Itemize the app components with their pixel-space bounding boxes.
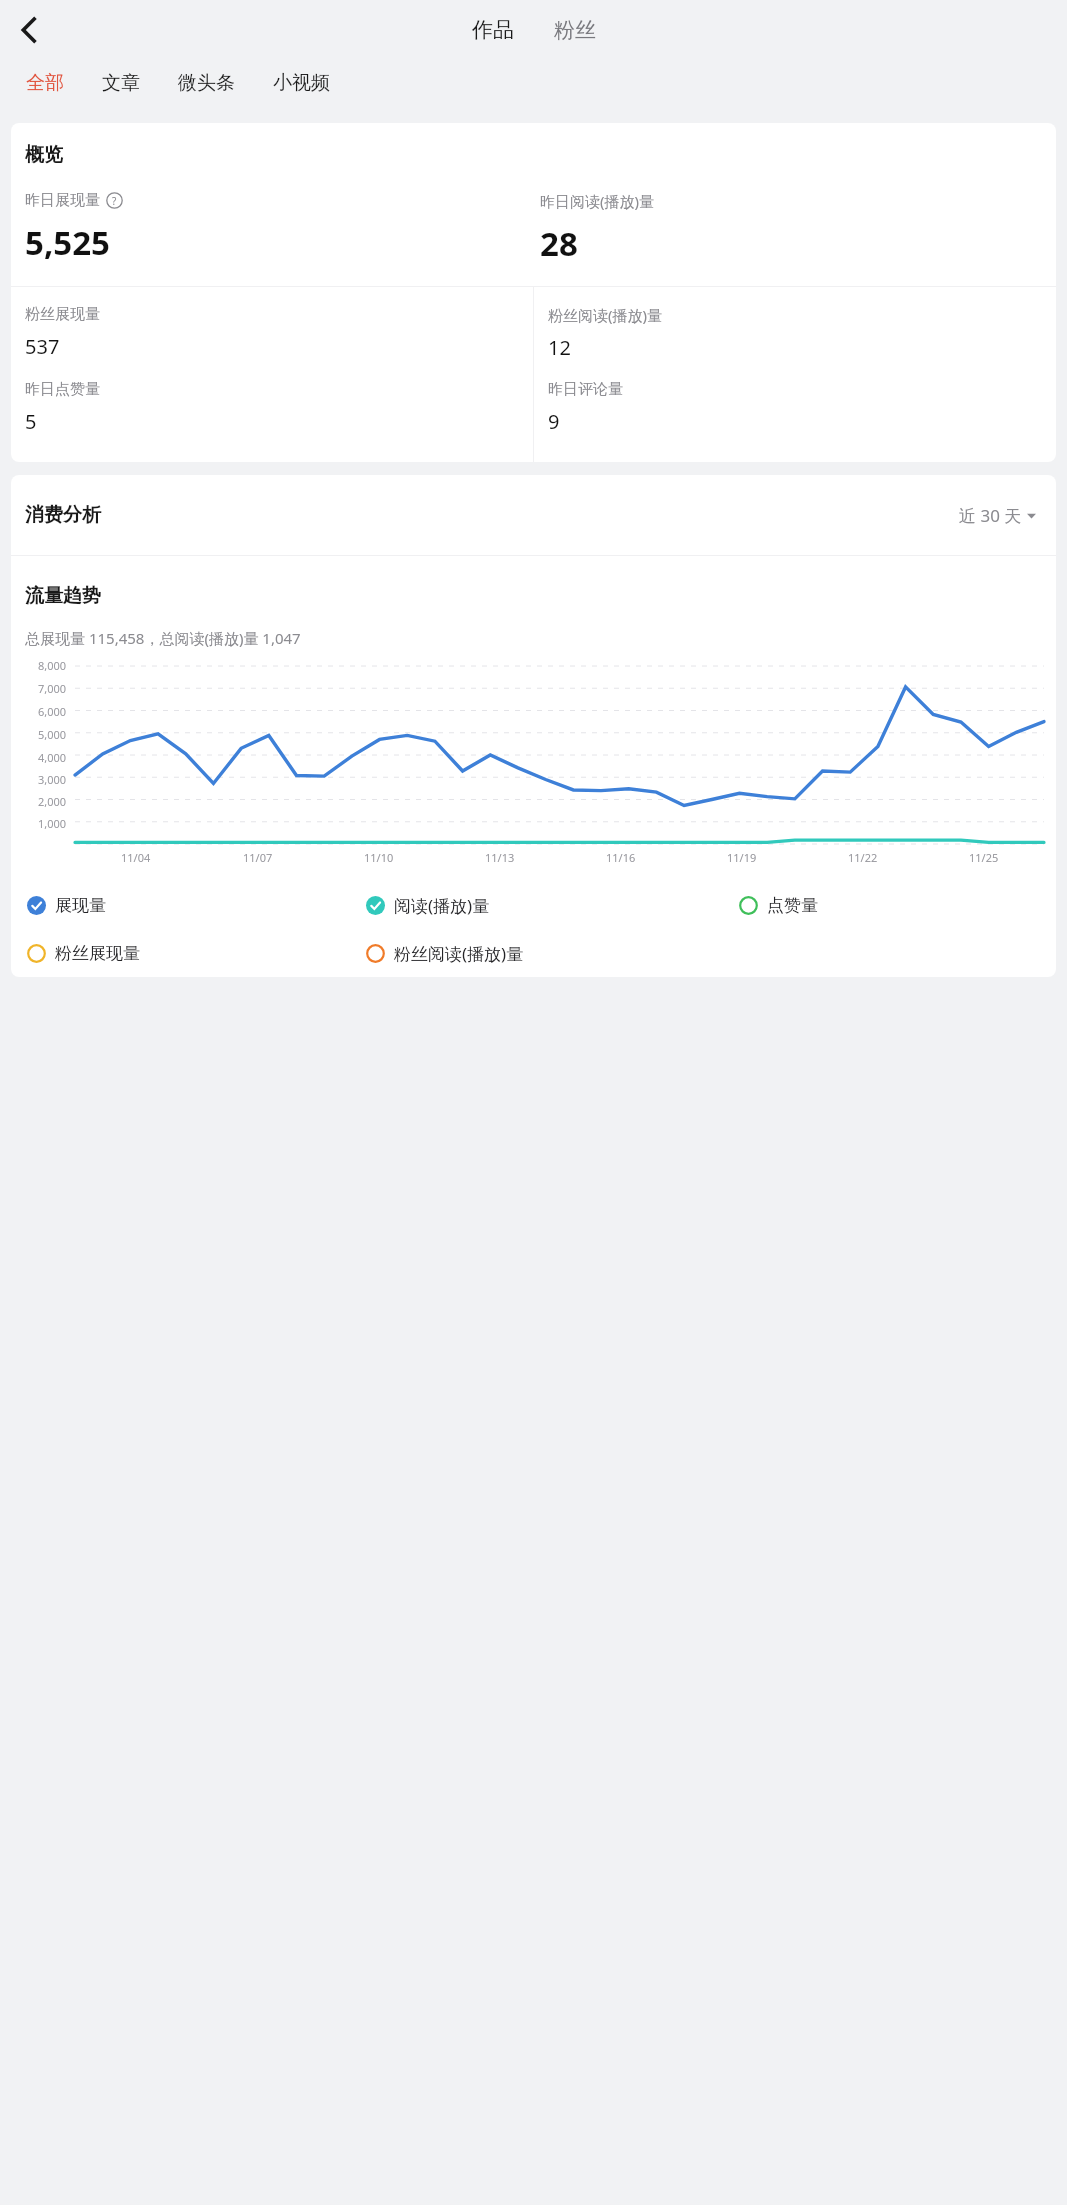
staticText: 粉丝阅读(播放)量 [548,305,663,325]
staticText: 阅读(播放)量 [394,894,490,917]
button[interactable]: 全部 [20,65,70,101]
button[interactable]: 小视频 [267,65,336,101]
staticText: 微头条 [178,71,235,95]
staticText: 537 [25,333,60,360]
staticText: 5,000 [38,727,67,742]
staticText: 近 30 天 [959,504,1022,527]
staticText: 5,525 [25,220,110,265]
staticText: 概览 [25,143,63,167]
staticText: ? [112,194,117,208]
button[interactable]: 展现量 [27,891,106,920]
staticText: 昨日点赞量 [25,380,100,399]
button[interactable]: 粉丝展现量 [27,939,140,968]
staticText: 粉丝阅读(播放)量 [394,942,524,965]
staticText: 6,000 [38,704,67,719]
staticText: 5 [25,408,37,435]
button[interactable]: 近 30 天 [953,498,1042,533]
staticText: 11/19 [727,850,757,865]
staticText: 流量趋势 [25,584,101,608]
staticText: 粉丝展现量 [25,305,100,324]
staticText: 昨日阅读(播放)量 [540,191,655,211]
staticText: 11/13 [485,850,515,865]
staticText: 11/25 [969,850,999,865]
staticText: 3,000 [38,772,67,787]
staticText: 8,000 [38,658,67,673]
staticText: 粉丝展现量 [55,943,140,964]
button[interactable]: 阅读(播放)量 [366,890,490,921]
staticText: 7,000 [38,681,67,696]
button[interactable]: 粉丝 [546,9,604,51]
button[interactable]: Help [106,192,123,209]
staticText: 小视频 [273,71,330,95]
staticText: 昨日展现量 [25,191,100,210]
staticText: 28 [540,221,578,266]
staticText: 昨日评论量 [548,380,623,399]
staticText: 1,000 [38,816,67,831]
staticText: 总展现量 115,458，总阅读(播放)量 1,047 [25,628,301,648]
staticText: 点赞量 [767,895,818,916]
button[interactable]: 文章 [96,65,146,101]
button[interactable]: 微头条 [172,65,241,101]
staticText: 2,000 [38,794,67,809]
staticText: 11/22 [848,850,878,865]
staticText: 11/04 [121,850,151,865]
button[interactable]: 点赞量 [739,891,818,920]
staticText: 作品 [472,17,514,43]
staticText: 粉丝 [554,17,596,43]
staticText: 展现量 [55,895,106,916]
staticText: 4,000 [38,750,67,765]
staticText: 11/07 [243,850,273,865]
staticText: 消费分析 [25,503,101,527]
staticText: 11/10 [364,850,394,865]
button[interactable]: 粉丝阅读(播放)量 [366,938,524,969]
staticText: 11/16 [606,850,636,865]
button[interactable]: Back [4,5,54,55]
button[interactable]: 作品 [464,9,522,51]
staticText: 文章 [102,71,140,95]
staticText: 12 [548,334,571,361]
staticText: 9 [548,408,560,435]
staticText: 全部 [26,71,64,95]
